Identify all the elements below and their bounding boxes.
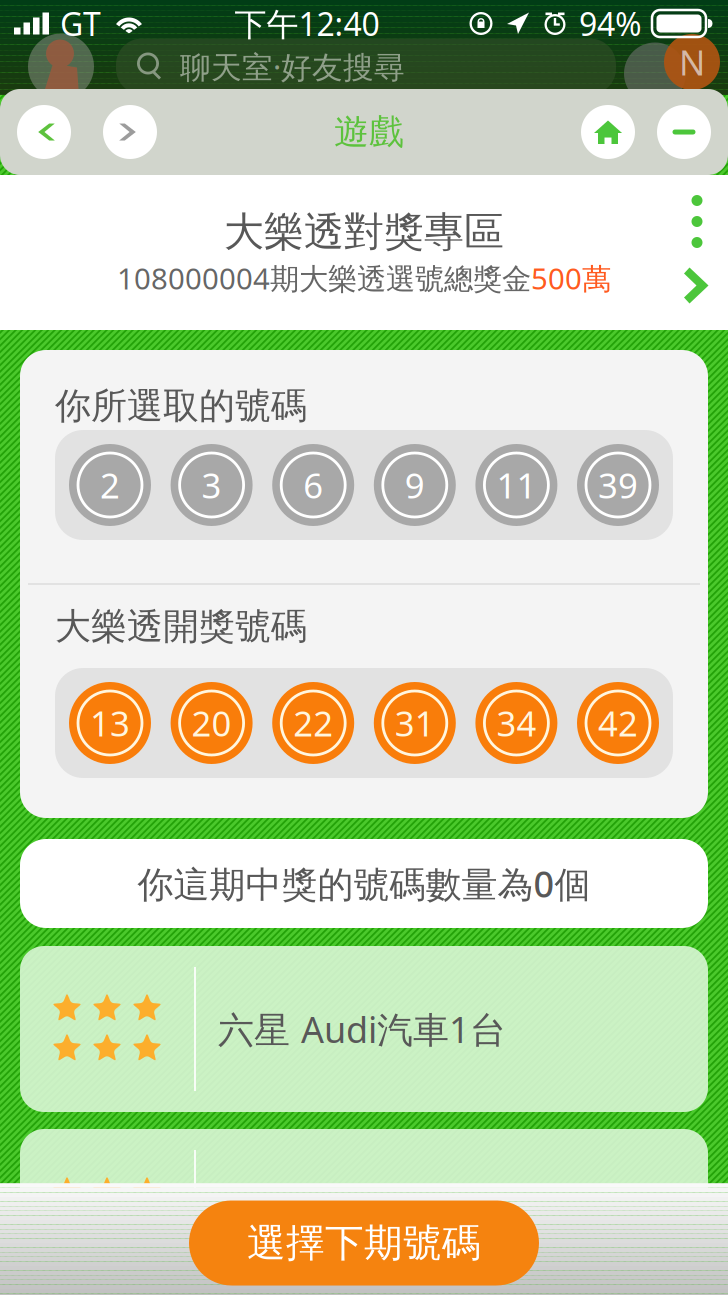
staticText: 大樂透對獎專區 (224, 207, 504, 257)
button[interactable]: 選擇下期號碼 (189, 1200, 539, 1285)
staticText: 下午12:40 (234, 2, 379, 45)
staticText: 31 (395, 700, 435, 746)
staticText: N (679, 39, 705, 85)
staticText: 6 (303, 462, 323, 508)
staticText: 五星 現金10萬元 (218, 1188, 487, 1236)
staticText: 94% (579, 2, 642, 45)
staticText: 六星 Audi汽車1台 (218, 1005, 506, 1053)
button[interactable]: 六星 Audi汽車1台 (20, 946, 708, 1112)
button[interactable]: Next (668, 254, 726, 316)
staticText: 大樂透開獎號碼 (55, 604, 307, 649)
button[interactable]: 五星 現金10萬元 (20, 1129, 708, 1295)
staticText: 3 (202, 462, 222, 508)
staticText: 42 (598, 700, 638, 746)
staticText: 2 (100, 462, 120, 508)
staticText: 500萬 (531, 259, 611, 298)
staticText: 108000004期大樂透選號總獎金 (117, 259, 531, 298)
button[interactable]: Close (657, 105, 711, 159)
staticText: 11 (496, 462, 536, 508)
staticText: 聊天室·好友搜尋 (180, 46, 405, 87)
button[interactable]: Home (581, 105, 635, 159)
button[interactable]: Back (17, 105, 71, 159)
staticText: 你所選取的號碼 (55, 384, 307, 428)
staticText: 34 (496, 700, 536, 746)
button[interactable]: More options (668, 188, 726, 254)
button[interactable]: Forward (103, 105, 157, 159)
staticText: 遊戲 (334, 111, 404, 153)
staticText: 9 (405, 462, 425, 508)
staticText: 你這期中獎的號碼數量為0個 (137, 860, 590, 907)
staticText: 22 (293, 700, 333, 746)
staticText: 20 (192, 700, 232, 746)
staticText: 選擇下期號碼 (247, 1219, 481, 1267)
staticText: 39 (598, 462, 638, 508)
staticText: 13 (90, 700, 130, 746)
staticText: GT (60, 2, 101, 45)
